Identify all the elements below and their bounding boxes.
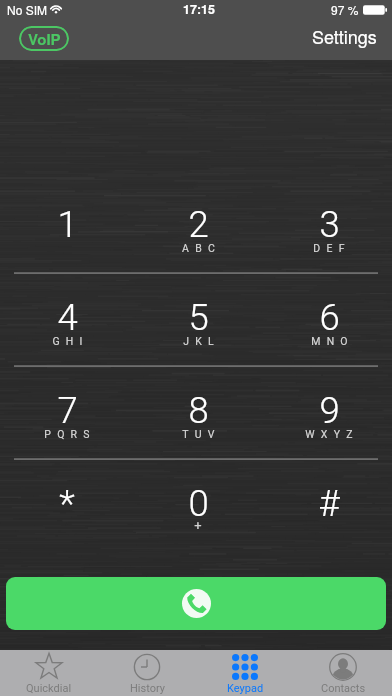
button[interactable]: 2 xyxy=(139,180,257,273)
staticText: Quickdial xyxy=(26,682,72,695)
staticText: GHI xyxy=(52,335,89,347)
button[interactable]: History xyxy=(98,650,196,696)
button[interactable]: # xyxy=(270,459,388,552)
staticText: VoIP xyxy=(28,28,61,49)
button[interactable]: 5 xyxy=(139,273,257,366)
button[interactable]: 4 xyxy=(8,273,126,366)
button[interactable]: 8 xyxy=(139,366,257,459)
staticText: 2 xyxy=(188,203,209,246)
button[interactable]: * xyxy=(8,459,126,552)
button[interactable]: 1 xyxy=(8,180,126,273)
staticText: 8 xyxy=(188,389,209,432)
staticText: TUV xyxy=(182,428,221,440)
staticText: WXYZ xyxy=(305,428,359,440)
button[interactable]: Settings xyxy=(312,23,377,49)
staticText: Contacts xyxy=(321,682,366,695)
button[interactable]: VoIP xyxy=(19,26,69,51)
button[interactable]: Call xyxy=(6,577,386,630)
staticText: Keypad xyxy=(227,682,264,695)
staticText: ABC xyxy=(182,242,221,254)
button[interactable]: Keypad xyxy=(196,650,294,696)
staticText: # xyxy=(318,482,340,525)
staticText: PQRS xyxy=(44,428,96,440)
button[interactable]: 0 xyxy=(139,459,257,552)
staticText: 3 xyxy=(319,203,340,246)
staticText: MNO xyxy=(311,335,354,347)
staticText: 0 xyxy=(188,482,209,525)
staticText: DEF xyxy=(313,242,351,254)
staticText: 6 xyxy=(319,296,340,339)
staticText: 7 xyxy=(57,389,78,432)
button[interactable]: 7 xyxy=(8,366,126,459)
staticText: 4 xyxy=(57,296,78,339)
button[interactable]: 6 xyxy=(270,273,388,366)
staticText: 1 xyxy=(57,203,78,246)
staticText: History xyxy=(130,682,165,695)
staticText: 5 xyxy=(188,296,209,339)
staticText: + xyxy=(194,518,202,533)
staticText: 97 % xyxy=(331,1,359,18)
staticText: Settings xyxy=(312,23,377,49)
button[interactable]: Quickdial xyxy=(0,650,98,696)
button[interactable]: 3 xyxy=(270,180,388,273)
staticText: 17:15 xyxy=(183,0,215,18)
button[interactable]: Contacts xyxy=(294,650,392,696)
staticText: JKL xyxy=(183,335,220,347)
staticText: 9 xyxy=(319,389,340,432)
staticText: No SIM xyxy=(7,1,48,18)
staticText: * xyxy=(59,482,75,525)
button[interactable]: 9 xyxy=(270,366,388,459)
